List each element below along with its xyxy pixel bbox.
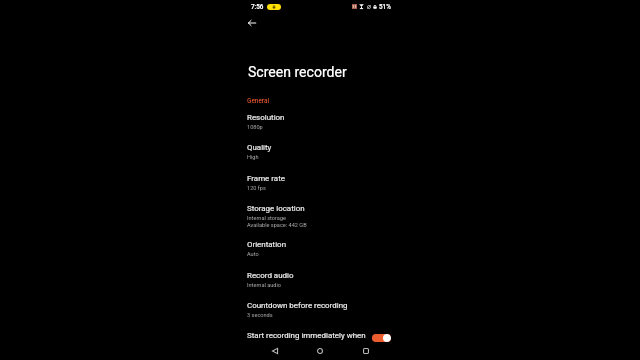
button[interactable]: Orientation: [239, 240, 401, 258]
staticText: Internal storage: [247, 215, 286, 222]
staticText: Available space: 442 GB: [247, 222, 307, 229]
staticText: Screen recorder: [248, 64, 347, 80]
staticText: Orientation: [247, 240, 287, 249]
button[interactable]: Back: [267, 344, 283, 358]
staticText: 51%: [379, 3, 391, 10]
button[interactable]: Recent apps: [358, 344, 374, 358]
staticText: Start recording immediately when: [247, 331, 366, 340]
staticText: Record audio: [247, 271, 294, 280]
staticText: Internal audio: [247, 282, 282, 289]
button[interactable]: Quality: [239, 143, 401, 161]
staticText: Storage location: [247, 204, 305, 213]
button[interactable]: Countdown before recording: [239, 301, 401, 319]
staticText: 7:56: [251, 3, 264, 10]
staticText: 3 seconds: [247, 312, 273, 319]
staticText: Auto: [247, 251, 259, 258]
button[interactable]: Resolution: [239, 113, 401, 131]
button[interactable]: Storage location: [239, 204, 401, 229]
staticText: General: [247, 97, 270, 105]
button[interactable]: Frame rate: [239, 174, 401, 192]
button[interactable]: Record audio: [239, 271, 401, 289]
staticText: Quality: [247, 143, 272, 152]
staticText: Frame rate: [247, 174, 285, 183]
staticText: Resolution: [247, 113, 285, 122]
staticText: 1080p: [247, 124, 263, 131]
staticText: High: [247, 154, 259, 161]
staticText: 120 fps: [247, 185, 266, 192]
button[interactable]: Home: [312, 344, 328, 358]
button[interactable]: Start recording immediately when: [239, 329, 401, 343]
button[interactable]: Navigate up: [245, 16, 259, 30]
staticText: Countdown before recording: [247, 301, 348, 310]
